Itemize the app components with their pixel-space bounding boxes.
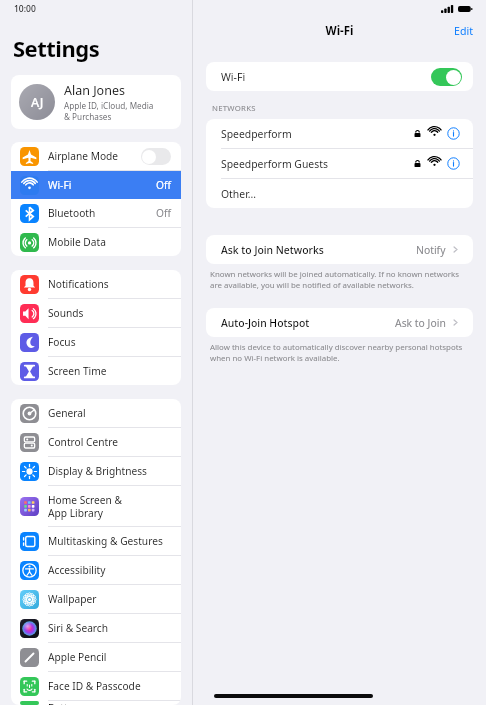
staticText: NETWORKS — [212, 103, 256, 114]
staticText: Edit — [454, 24, 473, 38]
staticText: Auto-Join Hotspot — [221, 316, 310, 330]
staticText: Mobile Data — [48, 235, 106, 249]
staticText: General — [48, 406, 86, 420]
button[interactable]: Multitasking & Gestures — [11, 527, 181, 555]
staticText: AJ — [31, 94, 44, 111]
staticText: Display & Brightness — [48, 464, 148, 478]
staticText: Battery — [48, 701, 83, 705]
button[interactable]: Sounds — [11, 299, 181, 327]
button[interactable]: AJ — [11, 75, 181, 129]
staticText: Bluetooth — [48, 206, 96, 220]
staticText: Speedperform Guests — [221, 157, 328, 171]
staticText: Off — [156, 206, 171, 220]
staticText: Siri & Search — [48, 621, 109, 635]
staticText: Apple ID, iCloud, Media — [64, 100, 154, 111]
button[interactable]: Bluetooth — [11, 199, 181, 227]
button[interactable]: Airplane Mode — [11, 142, 181, 170]
button[interactable]: Ask to Join Networks — [206, 235, 473, 264]
button[interactable]: Airplane Mode toggle — [141, 148, 171, 165]
staticText: Known networks will be joined automatica… — [210, 269, 469, 291]
button[interactable]: Siri & Search — [11, 614, 181, 642]
staticText: Wi-Fi — [193, 23, 486, 39]
staticText: Face ID & Passcode — [48, 679, 141, 693]
button[interactable]: Face ID & Passcode — [11, 672, 181, 700]
staticText: Airplane Mode — [48, 149, 119, 163]
button[interactable]: More info about Speedperform — [447, 127, 460, 140]
staticText: Home Screen & App Library — [48, 493, 123, 520]
staticText: Focus — [48, 335, 76, 349]
button[interactable]: Notifications — [11, 270, 181, 298]
button[interactable]: Accessibility — [11, 556, 181, 584]
button[interactable]: More info about Speedperform Guests — [447, 157, 460, 170]
staticText: Other... — [221, 187, 257, 201]
staticText: Allow this device to automatically disco… — [210, 342, 469, 364]
button[interactable]: Wi-Fi — [206, 62, 473, 91]
button[interactable]: General — [11, 399, 181, 427]
staticText: Notifications — [48, 277, 109, 291]
button[interactable]: Mobile Data — [11, 228, 181, 256]
staticText: Accessibility — [48, 563, 106, 577]
staticText: Wi-Fi — [48, 178, 72, 192]
staticText: Ask to Join Networks — [221, 243, 324, 257]
staticText: Screen Time — [48, 364, 107, 378]
button[interactable]: Wallpaper — [11, 585, 181, 613]
button[interactable]: Speedperform — [206, 119, 473, 148]
button[interactable]: Home Screen & App Library — [11, 486, 181, 526]
button[interactable]: Battery — [11, 701, 181, 705]
button[interactable]: Speedperform Guests — [206, 149, 473, 178]
button[interactable]: Edit — [441, 20, 486, 42]
staticText: Settings — [13, 33, 100, 63]
button[interactable]: Control Centre — [11, 428, 181, 456]
staticText: Control Centre — [48, 435, 118, 449]
button[interactable]: Wi-Fi — [11, 171, 181, 199]
staticText: Wallpaper — [48, 592, 97, 606]
staticText: Off — [156, 178, 171, 192]
staticText: Sounds — [48, 306, 84, 320]
staticText: Multitasking & Gestures — [48, 534, 163, 548]
button[interactable]: Other... — [206, 179, 473, 208]
staticText: Ask to Join — [395, 316, 446, 330]
button[interactable]: Apple Pencil — [11, 643, 181, 671]
staticText: Notify — [416, 243, 446, 257]
button[interactable]: Focus — [11, 328, 181, 356]
staticText: Speedperform — [221, 127, 292, 141]
button[interactable]: Wi-Fi on — [431, 68, 462, 86]
button[interactable]: Screen Time — [11, 357, 181, 385]
staticText: & Purchases — [64, 111, 112, 122]
staticText: Alan Jones — [64, 82, 125, 99]
staticText: Apple Pencil — [48, 650, 107, 664]
button[interactable]: Auto-Join Hotspot — [206, 308, 473, 337]
button[interactable]: Display & Brightness — [11, 457, 181, 485]
staticText: 10:00 — [14, 3, 36, 15]
staticText: Wi-Fi — [221, 70, 246, 84]
